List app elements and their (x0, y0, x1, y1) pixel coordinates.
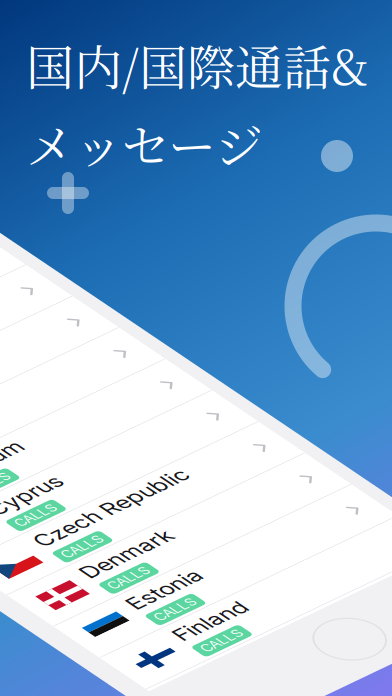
button[interactable]: Cyprus (20, 377, 350, 433)
staticText: CALLS (94, 528, 137, 544)
staticText: 国内/国際通話& (26, 30, 368, 99)
button[interactable]: Finland (20, 607, 350, 663)
button[interactable]: Belgium (20, 320, 350, 376)
staticText: Estonia (89, 552, 166, 579)
staticText: CALLS (94, 355, 137, 371)
button[interactable]: Estonia (20, 549, 350, 606)
staticText: Finland (89, 609, 165, 637)
staticText: Denmark (89, 495, 185, 522)
button[interactable]: Czech Republic (20, 434, 350, 491)
staticText: Cyprus (89, 380, 166, 407)
staticText: CALLS (94, 585, 137, 601)
staticText: メッセージ (26, 109, 263, 178)
button[interactable]: Denmark (20, 492, 350, 548)
staticText: Belgium (89, 322, 174, 350)
staticText: CALLS (94, 642, 137, 658)
